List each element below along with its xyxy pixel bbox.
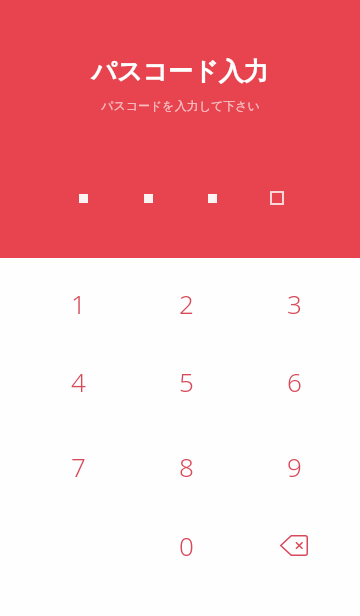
staticText: パスコード入力 [91, 56, 269, 87]
staticText: 5 [179, 364, 194, 399]
staticText: 3 [287, 286, 302, 321]
staticText: 0 [179, 528, 194, 563]
button[interactable]: 3 [240, 283, 348, 323]
button[interactable]: 7 [24, 446, 132, 486]
staticText: 7 [71, 449, 86, 484]
staticText: 8 [179, 449, 194, 484]
staticText: 4 [71, 364, 86, 399]
button[interactable]: 1 [24, 283, 132, 323]
button[interactable]: 4 [24, 361, 132, 401]
button[interactable]: 8 [132, 446, 240, 486]
button[interactable]: Backspace [240, 525, 348, 565]
staticText: 2 [179, 286, 194, 321]
staticText: 6 [287, 364, 302, 399]
button[interactable]: 9 [240, 446, 348, 486]
staticText: 1 [71, 286, 86, 321]
staticText: パスコードを入力して下さい [101, 98, 260, 113]
button[interactable]: 5 [132, 361, 240, 401]
staticText: 9 [287, 449, 302, 484]
button[interactable]: 2 [132, 283, 240, 323]
button[interactable]: 6 [240, 361, 348, 401]
button[interactable]: 0 [132, 525, 240, 565]
